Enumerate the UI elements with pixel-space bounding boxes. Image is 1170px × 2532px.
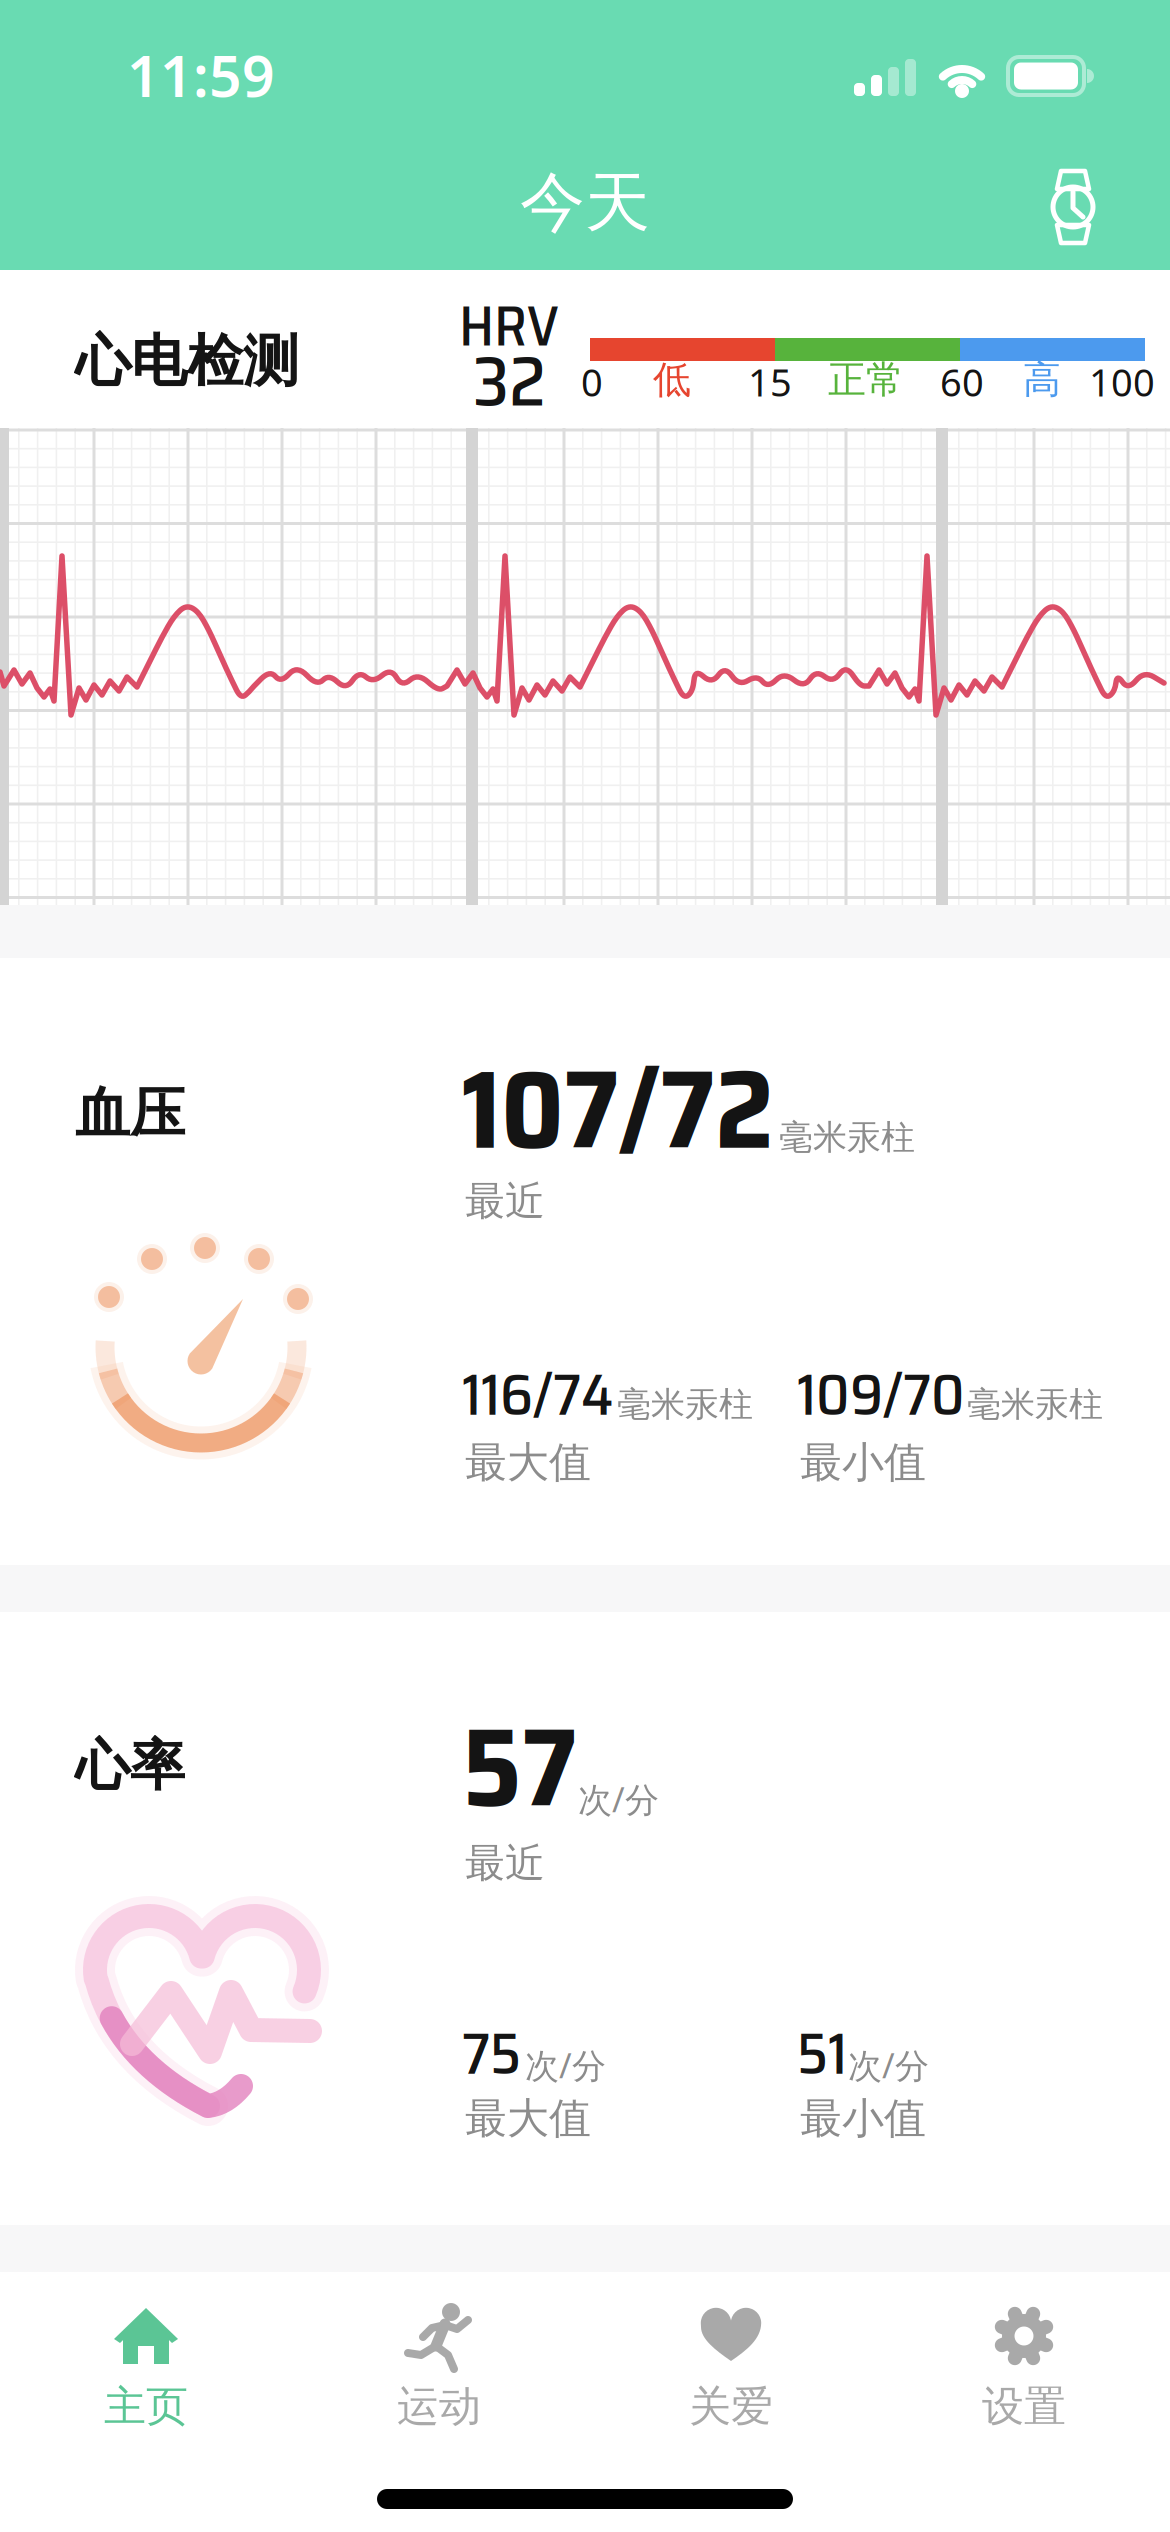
staticText: 今天 <box>520 162 650 244</box>
staticText: 51 <box>797 2008 847 2099</box>
staticText: 100 <box>1089 356 1155 408</box>
staticText: 心率 <box>75 1731 185 1800</box>
staticText: 次/分 <box>525 2042 606 2088</box>
staticText: 11:59 <box>127 36 275 114</box>
staticText: 15 <box>748 356 792 408</box>
button[interactable]: 设置 <box>878 2276 1170 2532</box>
staticText: 次/分 <box>848 2042 929 2088</box>
staticText: 最小值 <box>800 1436 926 1489</box>
button[interactable]: 主页 <box>0 2276 1170 2532</box>
staticText: 次/分 <box>578 1776 659 1822</box>
staticText: 毫米汞柱 <box>617 1383 753 1426</box>
staticText: 75 <box>462 2008 521 2099</box>
staticText: 心电检测 <box>75 326 299 396</box>
button[interactable]: 关爱 <box>585 2276 1170 2532</box>
staticText: 57 <box>462 1681 577 1854</box>
staticText: 109/70 <box>797 1349 965 1440</box>
staticText: 32 <box>473 326 546 436</box>
staticText: 116/74 <box>462 1349 613 1440</box>
button[interactable]: 运动 <box>293 2276 1170 2532</box>
staticText: 低 <box>653 356 691 404</box>
staticText: 最小值 <box>800 2092 926 2145</box>
staticText: 最大值 <box>465 1436 591 1489</box>
staticText: 最近 <box>465 1176 545 1226</box>
staticText: 关爱 <box>689 2380 773 2433</box>
staticText: 0 <box>581 356 603 408</box>
staticText: 设置 <box>982 2380 1066 2433</box>
staticText: 毫米汞柱 <box>779 1116 915 1159</box>
staticText: HRV <box>459 282 559 370</box>
staticText: 毫米汞柱 <box>967 1383 1103 1426</box>
staticText: 107/72 <box>462 1023 774 1196</box>
staticText: 最大值 <box>465 2092 591 2145</box>
staticText: 血压 <box>75 1079 185 1148</box>
staticText: 60 <box>940 356 984 408</box>
staticText: 最近 <box>465 1838 545 1888</box>
button[interactable]: 手表 <box>1026 161 1170 2532</box>
staticText: 运动 <box>397 2380 481 2433</box>
staticText: 正常 <box>828 356 904 404</box>
staticText: 高 <box>1023 356 1061 404</box>
staticText: 主页 <box>104 2380 188 2433</box>
